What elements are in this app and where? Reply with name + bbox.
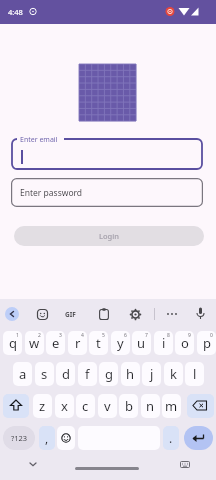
button[interactable]: ?123 bbox=[3, 426, 35, 450]
button[interactable]: k bbox=[164, 362, 183, 386]
button[interactable]: x bbox=[55, 394, 74, 418]
staticText: g bbox=[105, 365, 113, 383]
staticText: e bbox=[52, 334, 60, 352]
staticText: d bbox=[62, 365, 70, 383]
button[interactable]: , bbox=[39, 426, 55, 450]
staticText: 0 bbox=[210, 332, 213, 339]
staticText: , bbox=[45, 430, 49, 446]
button[interactable]: c bbox=[76, 394, 95, 418]
button[interactable] bbox=[3, 394, 29, 418]
staticText: f bbox=[85, 365, 90, 383]
staticText: w bbox=[29, 334, 40, 352]
staticText: x bbox=[61, 397, 68, 415]
button[interactable]: t bbox=[89, 331, 108, 355]
button[interactable]: Login bbox=[14, 226, 204, 246]
staticText: i bbox=[162, 334, 166, 352]
staticText: m bbox=[165, 397, 178, 415]
button[interactable]: n bbox=[141, 394, 160, 418]
button[interactable]: d bbox=[56, 362, 75, 386]
button[interactable]: y bbox=[111, 331, 130, 355]
staticText: p bbox=[203, 334, 211, 352]
button[interactable]: p bbox=[197, 331, 216, 355]
button[interactable]: a bbox=[13, 362, 32, 386]
staticText: Enter email bbox=[20, 135, 58, 145]
staticText: r bbox=[75, 334, 81, 352]
button[interactable] bbox=[187, 394, 214, 418]
staticText: Login bbox=[99, 231, 119, 241]
staticText: o bbox=[181, 334, 189, 352]
button[interactable] bbox=[166, 312, 178, 316]
staticText: Enter password bbox=[20, 187, 83, 199]
staticText: h bbox=[126, 365, 135, 383]
staticText: z bbox=[39, 397, 46, 415]
button[interactable]: i bbox=[154, 331, 173, 355]
staticText: k bbox=[170, 365, 177, 383]
button[interactable]: e bbox=[46, 331, 65, 355]
staticText: a bbox=[19, 365, 27, 383]
staticText: 7 bbox=[145, 332, 148, 339]
button[interactable]: b bbox=[119, 394, 138, 418]
button[interactable] bbox=[11, 138, 203, 170]
button[interactable]: o bbox=[175, 331, 194, 355]
staticText: 8 bbox=[167, 332, 170, 339]
button[interactable]: s bbox=[35, 362, 54, 386]
button[interactable]: g bbox=[99, 362, 118, 386]
button[interactable]: f bbox=[78, 362, 97, 386]
button[interactable] bbox=[57, 426, 75, 450]
staticText: 5 bbox=[102, 332, 105, 339]
staticText: . bbox=[169, 430, 173, 446]
staticText: 6 bbox=[124, 332, 127, 339]
button[interactable]: w bbox=[25, 331, 44, 355]
staticText: c bbox=[82, 397, 89, 415]
button[interactable] bbox=[5, 307, 19, 321]
button[interactable] bbox=[130, 309, 141, 320]
staticText: q bbox=[9, 334, 17, 352]
staticText: u bbox=[137, 334, 146, 352]
button[interactable]: l bbox=[185, 362, 204, 386]
button[interactable]: j bbox=[142, 362, 161, 386]
button[interactable] bbox=[37, 309, 48, 320]
staticText: ?123 bbox=[11, 433, 28, 443]
staticText: 4:48 bbox=[8, 7, 23, 17]
button[interactable]: m bbox=[162, 394, 181, 418]
button[interactable]: z bbox=[33, 394, 52, 418]
staticText: j bbox=[150, 365, 154, 383]
button[interactable]: r bbox=[68, 331, 87, 355]
button[interactable]: . bbox=[163, 426, 179, 450]
button[interactable] bbox=[196, 307, 205, 320]
staticText: v bbox=[104, 397, 111, 415]
button[interactable]: q bbox=[3, 331, 22, 355]
button[interactable]: h bbox=[121, 362, 140, 386]
button[interactable]: v bbox=[98, 394, 117, 418]
button[interactable]: u bbox=[132, 331, 151, 355]
staticText: t bbox=[96, 334, 101, 352]
button[interactable]: GIF bbox=[65, 310, 76, 319]
button[interactable] bbox=[29, 462, 37, 467]
staticText: y bbox=[117, 334, 124, 352]
staticText: s bbox=[41, 365, 48, 383]
button[interactable]: Enter password bbox=[11, 178, 203, 207]
button[interactable] bbox=[180, 461, 190, 468]
button[interactable] bbox=[99, 308, 109, 320]
staticText: b bbox=[125, 397, 133, 415]
staticText: 4 bbox=[81, 332, 84, 339]
staticText: 9 bbox=[188, 332, 191, 339]
button[interactable] bbox=[184, 426, 213, 450]
staticText: l bbox=[193, 365, 197, 383]
staticText: 2 bbox=[38, 332, 41, 339]
staticText: 1 bbox=[16, 332, 19, 339]
staticText: 3 bbox=[59, 332, 62, 339]
staticText: n bbox=[146, 397, 155, 415]
